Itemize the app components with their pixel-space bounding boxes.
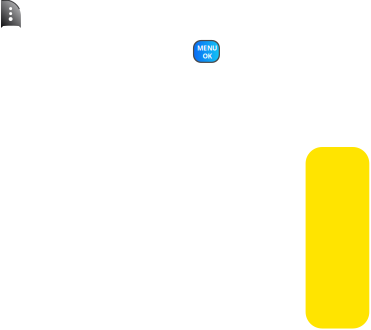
button[interactable]: More options (1, 0, 21, 28)
button[interactable]: MENU (193, 40, 220, 63)
staticText: MENU (197, 44, 217, 52)
staticText: OK (202, 51, 211, 60)
